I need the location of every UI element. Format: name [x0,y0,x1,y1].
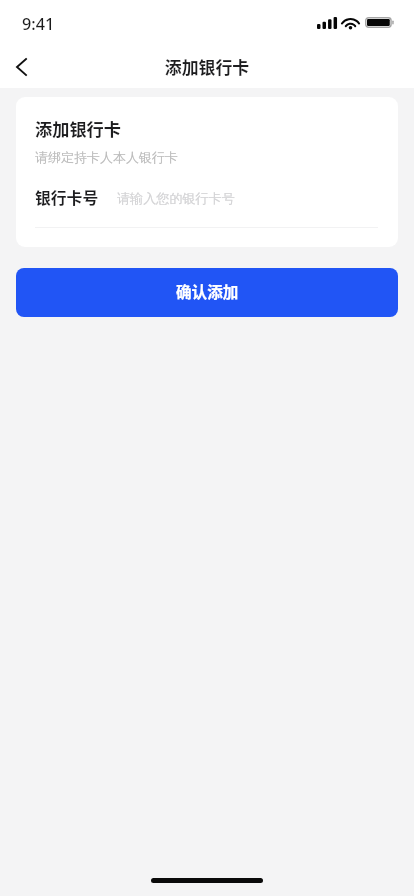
staticText: 确认添加 [176,280,239,303]
button[interactable]: 请输入您的银行卡号 [117,177,378,211]
button[interactable]: 确认添加 [16,268,398,317]
staticText: 添加银行卡 [35,116,121,141]
staticText: 添加银行卡 [0,54,414,78]
staticText: 9:41 [22,13,55,35]
staticText: 请输入您的银行卡号 [117,190,235,207]
staticText: 银行卡号 [35,186,99,209]
button[interactable]: Back [0,45,43,89]
staticText: 请绑定持卡人本人银行卡 [35,149,178,165]
